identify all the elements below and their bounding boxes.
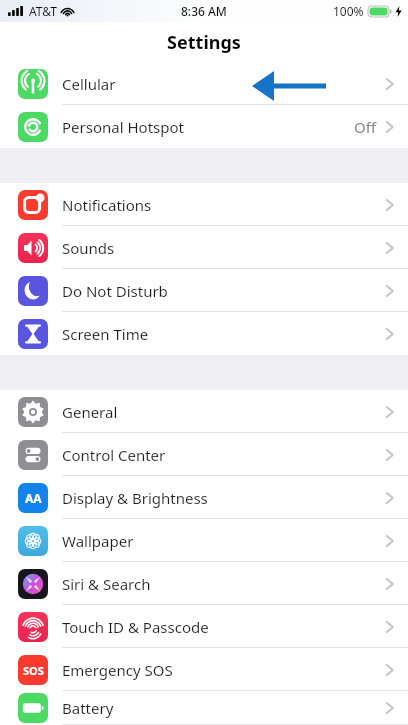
- button[interactable]: Personal Hotspot: [0, 105, 408, 148]
- button[interactable]: General: [0, 390, 408, 433]
- staticText: Touch ID & Passcode: [62, 617, 209, 637]
- staticText: Control Center: [62, 445, 166, 465]
- button[interactable]: SOS: [0, 648, 408, 691]
- staticText: Battery: [62, 698, 114, 718]
- staticText: 100%: [333, 3, 364, 19]
- staticText: Notifications: [62, 195, 152, 215]
- button[interactable]: Wallpaper: [0, 519, 408, 562]
- staticText: AA: [25, 490, 42, 506]
- staticText: Off: [354, 117, 377, 137]
- staticText: Screen Time: [62, 324, 149, 344]
- staticText: Sounds: [62, 238, 115, 258]
- staticText: AT&T: [29, 3, 57, 19]
- button[interactable]: Battery: [0, 691, 408, 725]
- staticText: Siri & Search: [62, 574, 151, 594]
- staticText: General: [62, 402, 118, 422]
- staticText: Wallpaper: [62, 531, 134, 551]
- button[interactable]: Screen Time: [0, 312, 408, 355]
- button[interactable]: Cellular: [0, 62, 408, 105]
- button[interactable]: Touch ID & Passcode: [0, 605, 408, 648]
- staticText: Cellular: [62, 74, 116, 94]
- button[interactable]: AA: [0, 476, 408, 519]
- staticText: Do Not Disturb: [62, 281, 168, 301]
- button[interactable]: Sounds: [0, 226, 408, 269]
- button[interactable]: Siri & Search: [0, 562, 408, 605]
- button[interactable]: Notifications: [0, 183, 408, 226]
- staticText: Emergency SOS: [62, 660, 173, 680]
- staticText: Settings: [167, 30, 241, 55]
- staticText: Personal Hotspot: [62, 117, 184, 137]
- button[interactable]: Do Not Disturb: [0, 269, 408, 312]
- button[interactable]: Control Center: [0, 433, 408, 476]
- staticText: SOS: [23, 663, 44, 678]
- staticText: 8:36 AM: [181, 3, 227, 19]
- staticText: Display & Brightness: [62, 488, 208, 508]
